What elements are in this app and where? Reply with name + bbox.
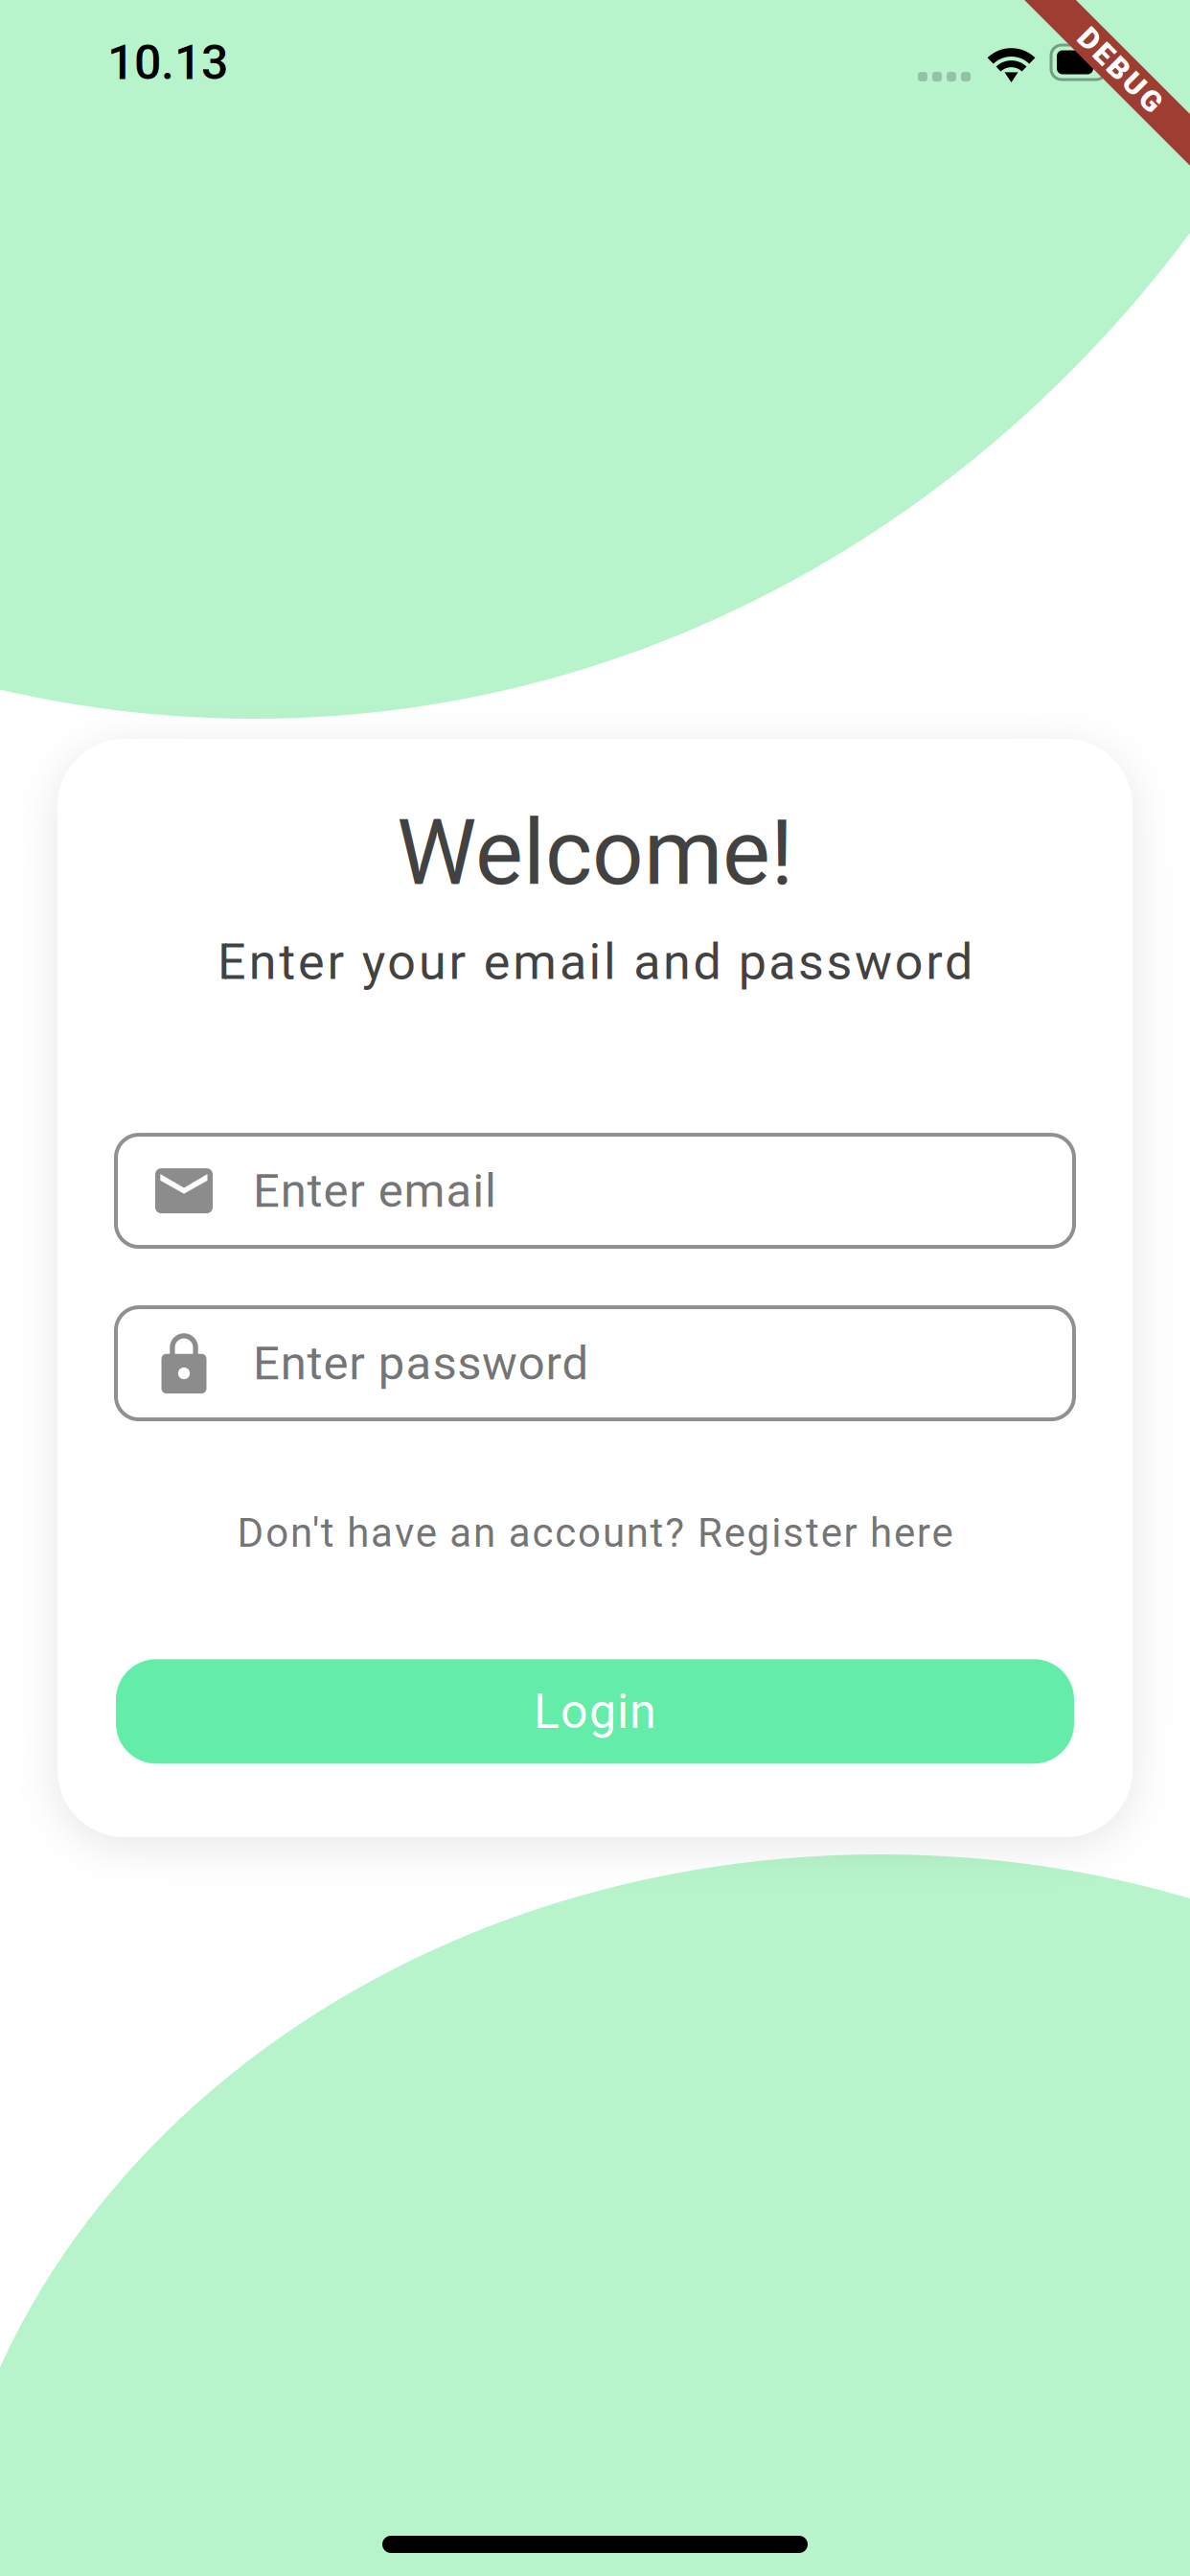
staticText: 10.13 [107, 34, 228, 91]
staticText: Welcome! [397, 800, 793, 906]
staticText: Don't have an account? Register here [237, 1509, 953, 1557]
staticText: Enter password [253, 1336, 589, 1391]
staticText: DEBUG [1067, 53, 1173, 87]
button[interactable]: Enter password [116, 1307, 1074, 1419]
button[interactable]: Login [116, 1659, 1074, 1764]
button[interactable]: Enter email [116, 1135, 1074, 1247]
staticText: Login [534, 1683, 656, 1739]
staticText: Enter your email and password [218, 933, 972, 991]
staticText: Enter email [253, 1163, 496, 1218]
button[interactable]: Don't have an account? Register here [237, 1509, 953, 1557]
